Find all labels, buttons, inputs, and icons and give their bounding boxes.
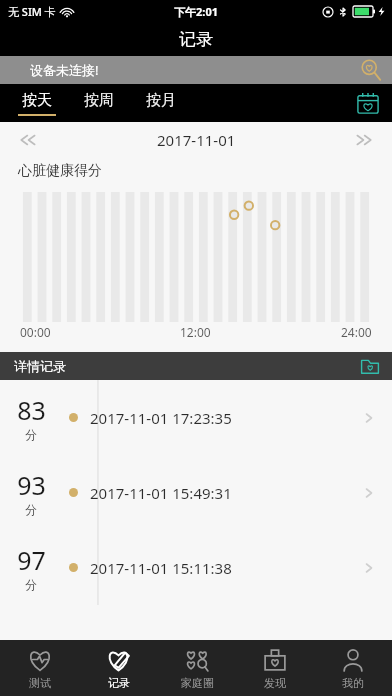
button[interactable]: 记录 [79,640,158,696]
button[interactable]: 97 [0,530,392,605]
button[interactable]: 我的 [314,640,392,696]
button[interactable]: Folder [360,356,380,376]
staticText: 发现 [264,676,286,690]
staticText: 97 [17,543,46,577]
staticText: 测试 [29,676,51,690]
button[interactable]: 按周 [80,91,118,116]
button[interactable]: 测试 [0,640,79,696]
staticText: 按周 [84,91,114,110]
button[interactable]: 设备未连接! [0,56,392,84]
staticText: 设备未连接! [30,61,99,79]
button[interactable]: Next day [352,126,380,154]
staticText: 2017-11-01 15:49:31 [90,483,232,503]
button[interactable]: Previous day [12,126,40,154]
button[interactable]: 83 [0,380,392,455]
button[interactable]: 按天 [18,91,56,116]
button[interactable]: 按月 [142,91,180,116]
button[interactable]: 93 [0,455,392,530]
staticText: 我的 [342,676,364,690]
staticText: 按天 [22,91,52,110]
staticText: 分 [25,502,37,517]
staticText: 无 SIM 卡 [8,4,56,19]
staticText: 记录 [179,29,213,50]
button[interactable]: 家庭圈 [158,640,236,696]
staticText: 分 [25,577,37,592]
staticText: 2017-11-01 [157,130,236,150]
staticText: 2017-11-01 17:23:35 [90,408,232,428]
staticText: 分 [25,427,37,442]
staticText: 24:00 [341,324,372,340]
staticText: 下午2:01 [174,4,218,19]
button[interactable]: Search [360,59,382,81]
staticText: 详情记录 [14,358,66,374]
button[interactable]: Calendar [356,91,380,115]
staticText: 00:00 [20,324,51,340]
staticText: 记录 [108,676,130,690]
staticText: 83 [17,393,46,427]
staticText: 2017-11-01 15:11:38 [90,558,232,578]
staticText: 家庭圈 [181,676,214,690]
staticText: 12:00 [180,324,211,340]
staticText: 心脏健康得分 [18,162,102,180]
staticText: 93 [17,468,46,502]
staticText: 按月 [146,91,176,110]
button[interactable]: 发现 [236,640,314,696]
